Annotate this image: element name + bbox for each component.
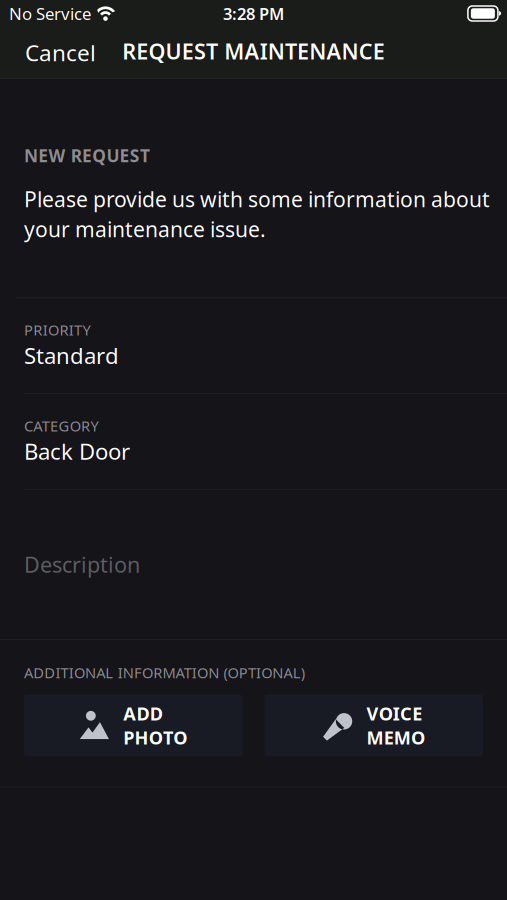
button[interactable]: PRIORITY	[0, 298, 507, 393]
staticText: 3:28 PM	[223, 2, 284, 24]
staticText: ADD PHOTO	[123, 701, 187, 749]
staticText: Cancel	[25, 37, 96, 67]
staticText: Please provide us with some information …	[24, 185, 490, 243]
button[interactable]: CATEGORY	[0, 394, 507, 489]
button[interactable]: ADD PHOTO	[24, 694, 242, 756]
staticText: Standard	[24, 341, 119, 370]
button[interactable]: VOICE MEMO	[264, 694, 483, 756]
button[interactable]: Description	[0, 490, 507, 639]
staticText: NEW REQUEST	[24, 144, 150, 167]
staticText: Description	[24, 550, 140, 579]
staticText: No Service	[9, 2, 91, 25]
staticText: PRIORITY	[24, 320, 90, 340]
staticText: REQUEST MAINTENANCE	[122, 37, 385, 65]
staticText: VOICE MEMO	[366, 701, 425, 749]
button[interactable]: Cancel	[0, 25, 112, 79]
staticText: ADDITIONAL INFORMATION (OPTIONAL)	[24, 663, 305, 682]
staticText: Back Door	[24, 436, 130, 466]
staticText: CATEGORY	[24, 416, 98, 435]
